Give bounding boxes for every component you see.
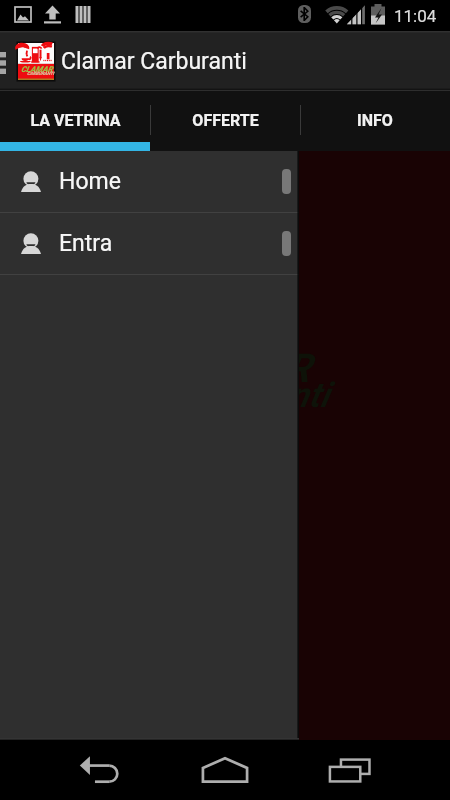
button[interactable]: OFFERTE — [150, 91, 300, 151]
staticText: 11:04 — [394, 6, 437, 26]
staticText: carburanti — [173, 375, 330, 416]
button[interactable]: Recent apps — [322, 740, 382, 800]
staticText: INFO — [357, 111, 393, 130]
button[interactable]: LA VETRINA — [0, 91, 150, 151]
staticText: OFFERTE — [192, 111, 259, 130]
staticText: Home — [59, 168, 121, 195]
button[interactable]: Open navigation drawer — [0, 31, 9, 91]
button[interactable]: Entra — [0, 213, 299, 274]
staticText: CLAMAR — [21, 65, 53, 74]
button[interactable]: Home — [195, 740, 255, 800]
button[interactable]: INFO — [300, 91, 450, 151]
staticText: Clamar Carburanti — [61, 48, 247, 75]
staticText: CARBURANTI — [27, 71, 54, 76]
button[interactable]: Back — [70, 740, 130, 800]
button[interactable]: Home — [0, 151, 299, 212]
staticText: Entra — [59, 230, 113, 257]
staticText: LA VETRINA — [30, 111, 121, 130]
staticText: CLAMAR — [152, 345, 311, 392]
